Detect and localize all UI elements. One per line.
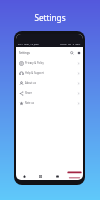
button[interactable]: Share bbox=[16, 88, 83, 98]
staticText: 9:41 Mon, 12 June bbox=[18, 42, 39, 45]
button[interactable]: Wallet bbox=[49, 161, 66, 180]
staticText: Share bbox=[25, 91, 32, 95]
staticText: Settings bbox=[19, 51, 30, 55]
button[interactable]: Rate us bbox=[16, 98, 83, 108]
button[interactable]: Notifications bbox=[75, 49, 82, 56]
button[interactable]: Home bbox=[16, 161, 32, 180]
button[interactable]: About us bbox=[16, 78, 83, 88]
staticText: Rate us bbox=[25, 101, 34, 105]
button[interactable]: Profile bbox=[66, 161, 83, 180]
button[interactable]: Search bbox=[68, 49, 75, 56]
staticText: Help & Support bbox=[25, 71, 44, 75]
button[interactable]: Dashboard bbox=[32, 161, 49, 180]
button[interactable]: Help & Support bbox=[16, 68, 83, 78]
staticText: Settings bbox=[34, 12, 66, 23]
button[interactable]: Privacy & Policy bbox=[16, 58, 83, 68]
staticText: Privacy & Policy bbox=[25, 61, 44, 65]
staticText: VoLTE 4G .ıl 86% bbox=[60, 42, 81, 45]
staticText: About us bbox=[25, 81, 36, 85]
